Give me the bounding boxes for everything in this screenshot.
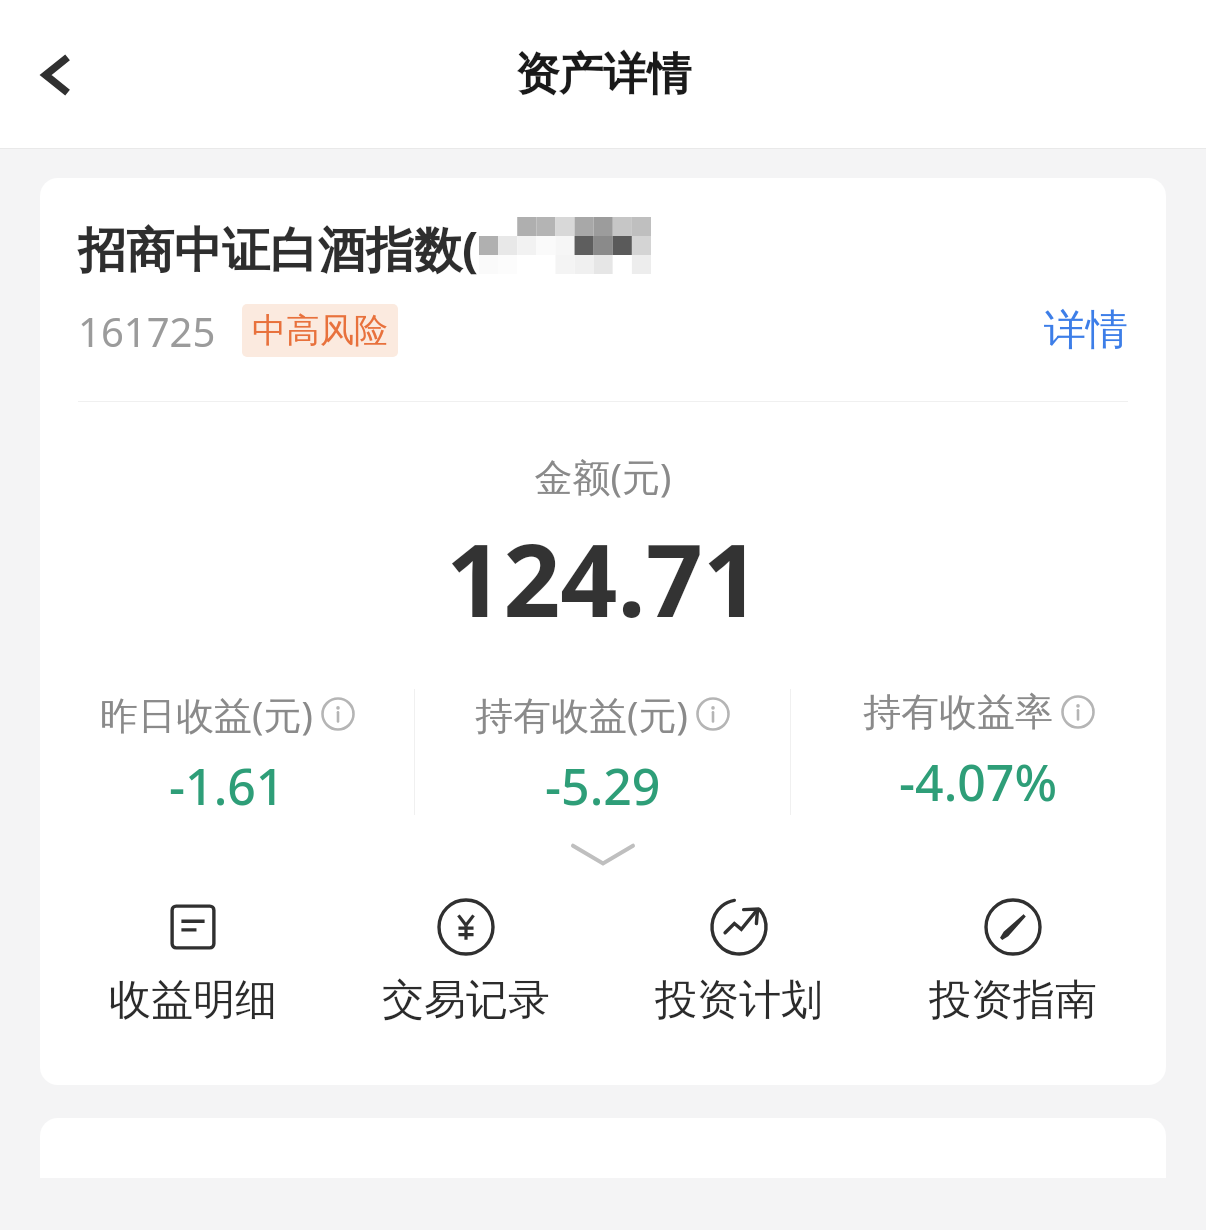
button[interactable]: 收益明细: [56, 898, 329, 1027]
button[interactable]: 详情: [1036, 298, 1136, 363]
staticText: 金额(元): [40, 450, 1166, 502]
button[interactable]: Back: [14, 32, 100, 118]
staticText: 投资计划: [655, 974, 823, 1027]
staticText: -5.29: [545, 752, 661, 816]
staticText: 收益明细: [109, 974, 277, 1027]
button[interactable]: Expand: [40, 826, 1166, 882]
staticText: 124.71: [40, 510, 1166, 646]
staticText: 交易记录: [382, 974, 550, 1027]
staticText: -4.07%: [899, 748, 1058, 816]
button[interactable]: 持有收益率: [791, 688, 1166, 816]
staticText: 持有收益(元): [475, 688, 688, 740]
button[interactable]: 投资指南: [876, 898, 1150, 1027]
button[interactable]: 持有收益(元): [415, 688, 790, 816]
button[interactable]: 交易记录: [329, 898, 602, 1027]
button[interactable]: 昨日收益(元): [40, 688, 414, 816]
staticText: 161725: [78, 304, 216, 358]
staticText: 持有收益率: [863, 688, 1053, 736]
staticText: 资产详情: [515, 47, 691, 102]
button[interactable]: 投资计划: [602, 898, 876, 1027]
staticText: 投资指南: [929, 974, 1097, 1027]
staticText: 招商中证白酒指数(: [78, 216, 479, 282]
staticText: 中高风险: [252, 309, 388, 352]
staticText: 详情: [1044, 304, 1128, 357]
staticText: -1.61: [169, 752, 285, 816]
staticText: 昨日收益(元): [100, 688, 313, 740]
